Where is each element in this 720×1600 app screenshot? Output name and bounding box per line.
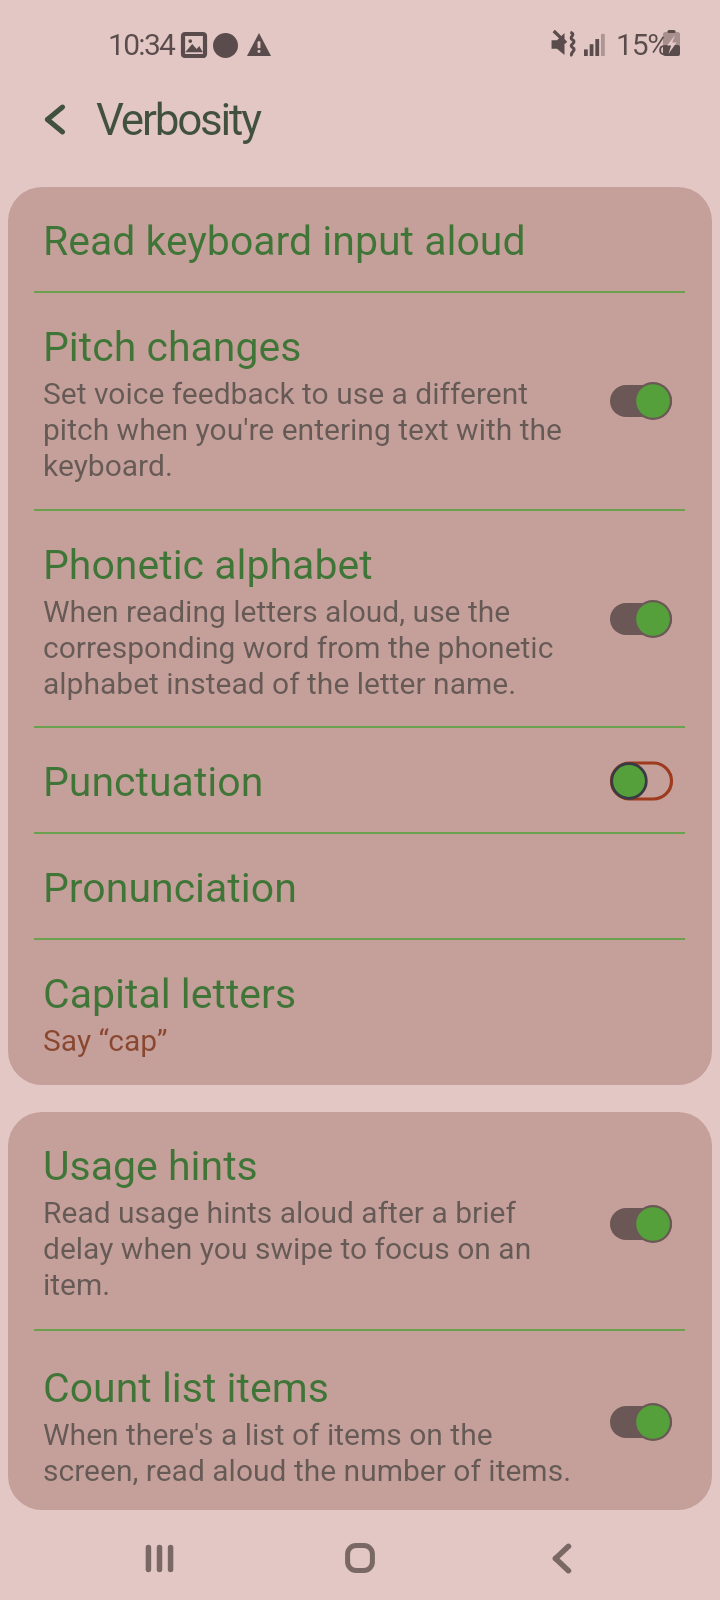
- button[interactable]: Switch on: [609, 1203, 673, 1245]
- button[interactable]: Navigate up: [28, 92, 82, 146]
- button[interactable]: Switch on: [609, 380, 673, 422]
- staticText: Pitch changes: [43, 323, 302, 371]
- staticText: Punctuation: [43, 758, 264, 806]
- staticText: 10:34: [108, 27, 175, 62]
- button[interactable]: Read keyboard input aloud: [8, 187, 712, 291]
- button[interactable]: Recent apps: [123, 1522, 195, 1594]
- staticText: Pronunciation: [43, 864, 297, 912]
- button[interactable]: Back: [526, 1522, 598, 1594]
- button[interactable]: Punctuation: [8, 728, 712, 832]
- staticText: Read keyboard input aloud: [43, 217, 526, 265]
- button[interactable]: Switch off: [609, 760, 673, 802]
- button[interactable]: Phonetic alphabet: [8, 511, 712, 726]
- staticText: Usage hints: [43, 1142, 258, 1190]
- staticText: Read usage hints aloud after a brief del…: [43, 1195, 578, 1302]
- staticText: Phonetic alphabet: [43, 541, 373, 589]
- button[interactable]: Switch on: [609, 1401, 673, 1443]
- button[interactable]: Home: [324, 1522, 396, 1594]
- staticText: Verbosity: [96, 94, 260, 146]
- button[interactable]: Pronunciation: [8, 834, 712, 938]
- staticText: When there's a list of items on the scre…: [43, 1417, 578, 1488]
- staticText: Set voice feedback to use a different pi…: [43, 376, 578, 483]
- staticText: When reading letters aloud, use the corr…: [43, 594, 578, 701]
- button[interactable]: Capital letters: [8, 940, 712, 1085]
- button[interactable]: Count list items: [8, 1331, 712, 1510]
- button[interactable]: Usage hints: [8, 1112, 712, 1329]
- staticText: Capital letters: [43, 970, 297, 1018]
- staticText: Say “cap”: [43, 1023, 168, 1058]
- button[interactable]: Switch on: [609, 598, 673, 640]
- staticText: 15%: [616, 27, 669, 62]
- button[interactable]: Pitch changes: [8, 293, 712, 509]
- staticText: Count list items: [43, 1364, 329, 1412]
